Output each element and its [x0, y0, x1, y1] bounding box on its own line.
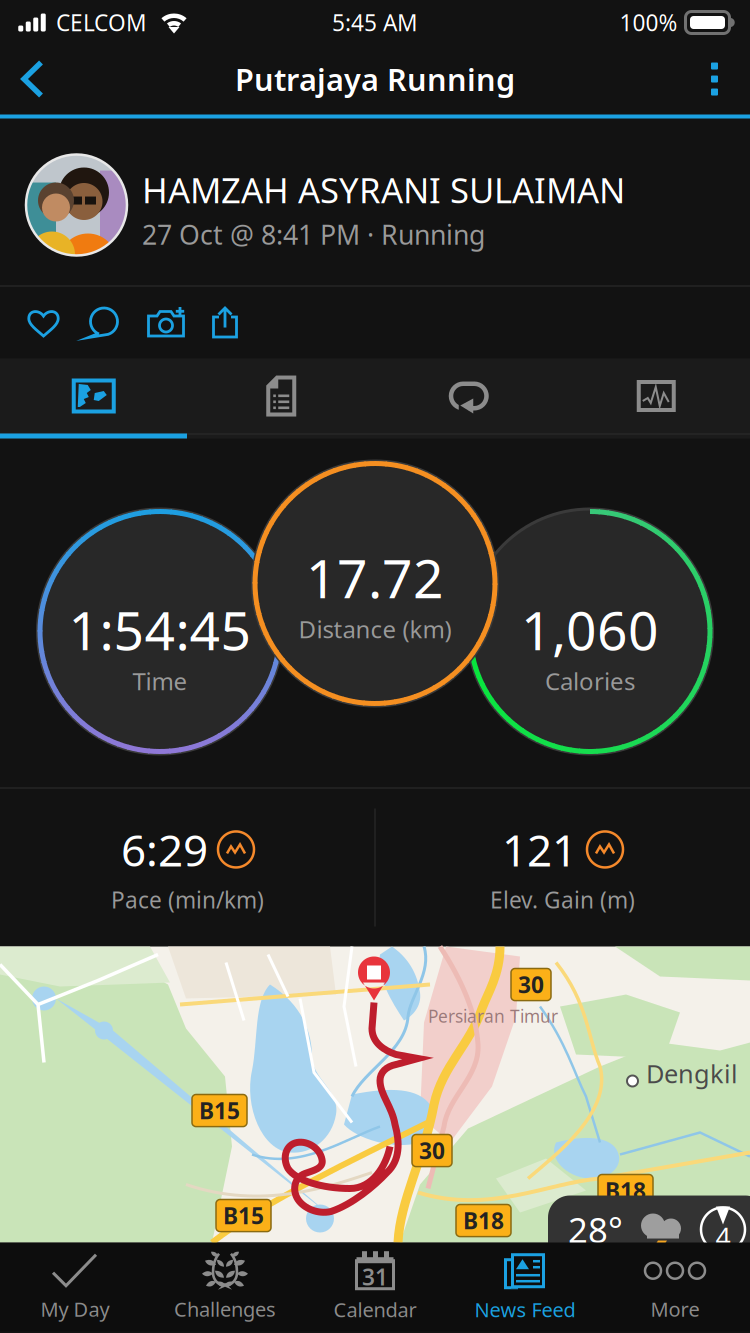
staticText: My Day	[40, 1296, 109, 1322]
staticText: 6:29	[121, 820, 208, 879]
staticText: 30	[518, 969, 544, 1000]
staticText: 5:45 AM	[332, 7, 418, 37]
staticText: Calories	[545, 665, 635, 697]
staticText: Persiaran Timur	[428, 1004, 558, 1027]
button[interactable]: My Day	[0, 1242, 150, 1331]
staticText: Challenges	[174, 1296, 276, 1322]
staticText: Time	[132, 665, 187, 697]
button[interactable]: Challenges	[150, 1242, 300, 1331]
staticText: 4	[715, 1220, 730, 1255]
staticText: CELCOM	[56, 7, 147, 37]
button[interactable]: Back	[0, 44, 69, 114]
staticText: Putrajaya Running	[235, 59, 515, 99]
staticText: News Feed	[474, 1296, 575, 1323]
staticText: B18	[605, 1175, 646, 1206]
button[interactable]: News Feed	[450, 1242, 600, 1331]
staticText: 27 Oct @ 8:41 PM · Running	[142, 217, 485, 252]
staticText: HAMZAH ASYRANI SULAIMAN	[142, 167, 625, 213]
button[interactable]: More options	[685, 46, 750, 111]
staticText: Calendar	[333, 1296, 416, 1323]
staticText: B18	[463, 1205, 504, 1236]
button[interactable]: Comment	[73, 286, 135, 358]
button[interactable]: Add photo	[135, 286, 199, 358]
staticText: 30	[419, 1135, 445, 1166]
staticText: Dengkil	[646, 1056, 738, 1090]
staticText: Distance (km)	[298, 613, 451, 645]
staticText: B15	[223, 1200, 264, 1231]
staticText: 1,060	[521, 594, 659, 665]
staticText: 17.72	[306, 542, 444, 613]
staticText: 121	[502, 820, 577, 879]
button[interactable]: 31	[300, 1242, 450, 1331]
button[interactable]: More	[600, 1242, 750, 1331]
button[interactable]: Share	[199, 286, 251, 358]
button[interactable]: Like	[13, 286, 73, 358]
staticText: 31	[362, 1262, 388, 1292]
staticText: B15	[199, 1095, 240, 1126]
button[interactable]: Charts	[562, 358, 750, 433]
staticText: Elev. Gain (m)	[490, 885, 635, 915]
staticText: 100%	[619, 7, 677, 37]
staticText: Pace (min/km)	[111, 885, 264, 915]
staticText: 28°	[568, 1206, 623, 1252]
staticText: More	[650, 1296, 699, 1322]
staticText: 1:54:45	[68, 594, 251, 665]
button[interactable]: Summary	[0, 358, 187, 433]
button[interactable]: Laps	[375, 358, 562, 433]
button[interactable]: Details	[187, 358, 375, 433]
